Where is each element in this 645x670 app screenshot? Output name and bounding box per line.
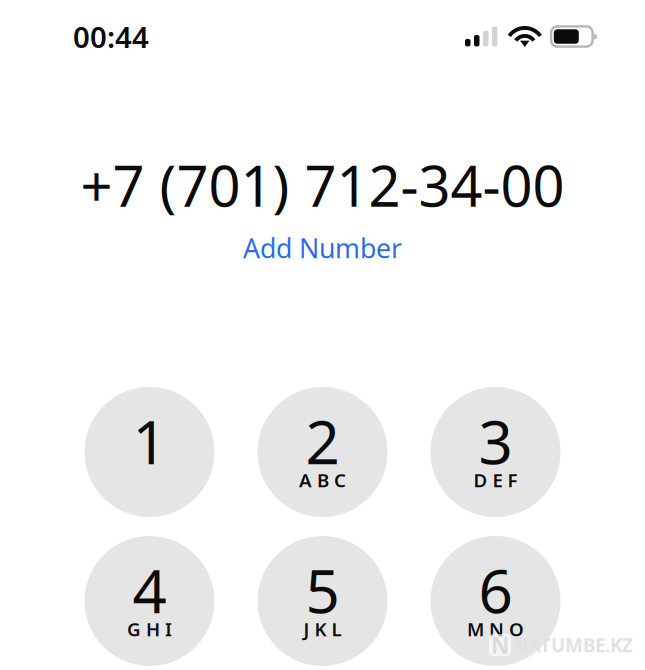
button[interactable]: 2 — [257, 387, 387, 517]
staticText: 2 — [305, 401, 339, 481]
staticText: A B C — [299, 468, 346, 492]
staticText: N — [491, 630, 509, 660]
staticText: J K L — [303, 617, 341, 641]
staticText: M N O — [467, 617, 524, 641]
staticText: 1 — [132, 401, 166, 481]
staticText: G H I — [127, 617, 172, 641]
staticText: 4 — [132, 550, 166, 630]
staticText: 00:44 — [73, 17, 149, 56]
staticText: NATUMBE.KZ — [513, 633, 633, 657]
button[interactable]: Add Number — [243, 230, 402, 266]
staticText: 3 — [478, 401, 512, 481]
button[interactable]: 1 — [84, 387, 214, 517]
staticText: Add Number — [243, 230, 402, 266]
staticText: +7 (701) 712-34-00 — [80, 148, 564, 222]
button[interactable]: 5 — [257, 536, 387, 666]
staticText: 6 — [478, 550, 512, 630]
button[interactable]: 3 — [430, 387, 560, 517]
staticText: D E F — [473, 468, 517, 492]
staticText: 5 — [305, 550, 339, 630]
button[interactable]: 4 — [84, 536, 214, 666]
button[interactable]: 6 — [430, 536, 560, 666]
